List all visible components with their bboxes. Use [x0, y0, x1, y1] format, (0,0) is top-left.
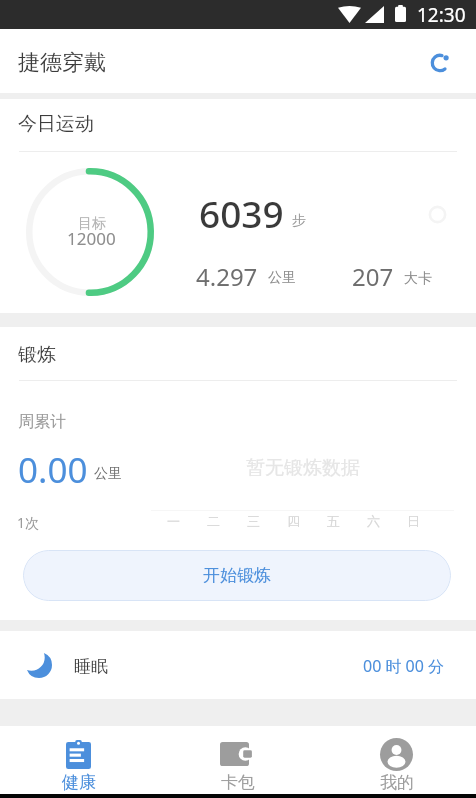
staticText: 暂无锻炼数据 — [246, 456, 360, 480]
staticText: 六 — [367, 513, 380, 529]
staticText: 我的 — [380, 772, 414, 793]
staticText: 12000 — [67, 227, 116, 250]
staticText: 卡包 — [221, 772, 255, 793]
button[interactable] — [0, 631, 476, 699]
staticText: 6039 — [199, 188, 284, 238]
button[interactable]: 开始锻炼 — [23, 550, 451, 601]
staticText: 周累计 — [18, 412, 66, 432]
staticText: 五 — [327, 513, 340, 529]
button[interactable] — [0, 29, 476, 93]
button[interactable]: 我的 — [317, 726, 476, 794]
staticText: 公里 — [268, 269, 296, 287]
staticText: 开始锻炼 — [203, 565, 271, 586]
staticText: 步 — [292, 212, 306, 230]
staticText: 今日运动 — [18, 112, 94, 136]
staticText: 三 — [247, 513, 260, 529]
staticText: 健康 — [62, 772, 96, 793]
button[interactable]: 健康 — [0, 726, 158, 794]
staticText: 公里 — [94, 465, 122, 483]
staticText: 一 — [167, 513, 180, 529]
staticText: 0.00 — [18, 446, 88, 494]
staticText: 锻炼 — [18, 343, 56, 367]
staticText: 睡眠 — [74, 656, 108, 677]
staticText: 207 — [352, 260, 394, 293]
staticText: 00 时 00 分 — [363, 655, 445, 677]
staticText: 捷德穿戴 — [18, 49, 106, 77]
staticText: 1次 — [17, 513, 40, 532]
staticText: 日 — [407, 513, 420, 529]
staticText: 二 — [207, 513, 220, 529]
staticText: 大卡 — [404, 270, 432, 288]
staticText: 目标 — [78, 215, 106, 233]
staticText: 12:30 — [417, 2, 466, 28]
button[interactable]: 卡包 — [158, 726, 317, 794]
button[interactable]: Refresh — [419, 42, 460, 83]
staticText: 四 — [287, 513, 300, 529]
staticText: 4.297 — [196, 260, 258, 293]
